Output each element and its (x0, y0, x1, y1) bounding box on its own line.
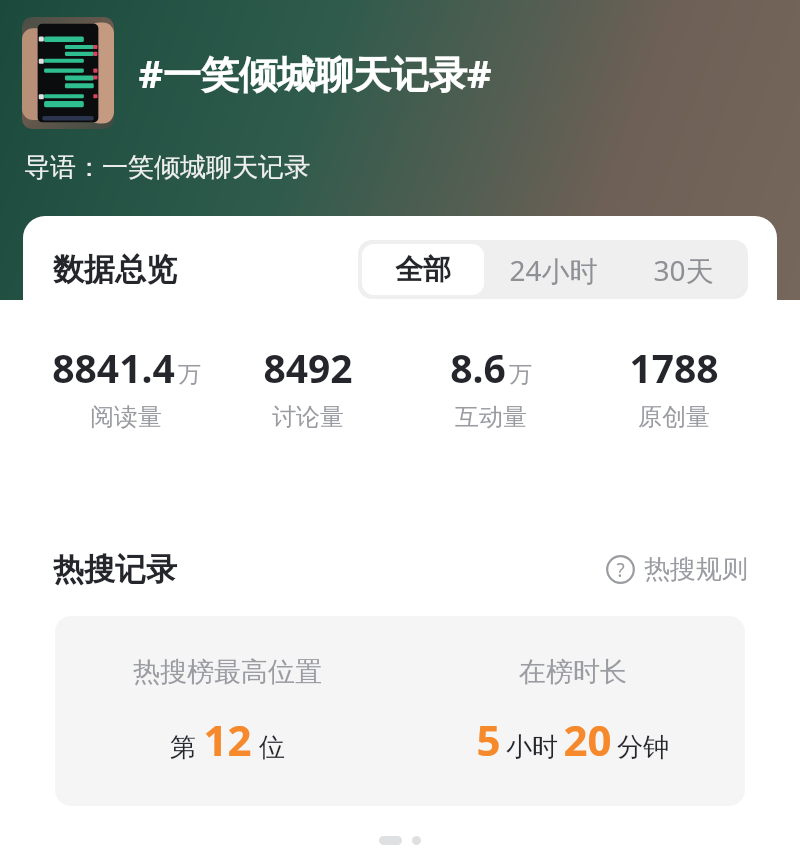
staticText: 万 (178, 360, 201, 389)
staticText: 导语：一笑倾城聊天记录 (24, 151, 310, 184)
button[interactable]: 24小时 (488, 240, 618, 299)
staticText: 8492 (263, 341, 353, 394)
staticText: 8.6 (450, 341, 506, 394)
other: 热搜规则说明 (606, 555, 635, 584)
staticText: 24小时 (509, 251, 598, 289)
staticText: 20 (563, 711, 612, 768)
staticText: 全部 (395, 252, 451, 287)
staticText: 万 (509, 360, 532, 389)
button[interactable]: 30天 (618, 240, 748, 299)
staticText: 12 (203, 711, 252, 768)
staticText: 互动量 (455, 402, 527, 432)
staticText: 阅读量 (90, 402, 162, 432)
staticText: 在榜时长 (519, 655, 627, 689)
staticText: 数据总览 (53, 250, 177, 289)
staticText: 分钟 (617, 731, 669, 764)
staticText: 30天 (653, 251, 714, 289)
staticText: ? (616, 557, 625, 583)
button[interactable]: 热搜规则说明 (606, 553, 748, 586)
button[interactable]: 8841.4 (35, 341, 217, 432)
button[interactable]: 1788 (582, 341, 765, 432)
staticText: #一笑倾城聊天记录# (138, 47, 492, 99)
staticText: 小时 (506, 731, 558, 764)
staticText: 热搜记录 (53, 550, 177, 589)
staticText: 原创量 (638, 402, 710, 432)
staticText: 5 (476, 711, 501, 768)
button[interactable]: 8.6 (399, 341, 582, 432)
staticText: 热搜规则 (644, 553, 748, 586)
button[interactable]: 全部 (362, 244, 484, 295)
button[interactable]: 8492 (217, 341, 399, 432)
staticText: 讨论量 (272, 402, 344, 432)
staticText: 8841.4 (52, 341, 175, 394)
staticText: 位 (259, 731, 285, 764)
staticText: 第 (170, 731, 196, 764)
button[interactable]: 热搜榜最高位置 (55, 616, 745, 806)
staticText: 热搜榜最高位置 (133, 655, 322, 689)
staticText: 1788 (629, 341, 719, 394)
